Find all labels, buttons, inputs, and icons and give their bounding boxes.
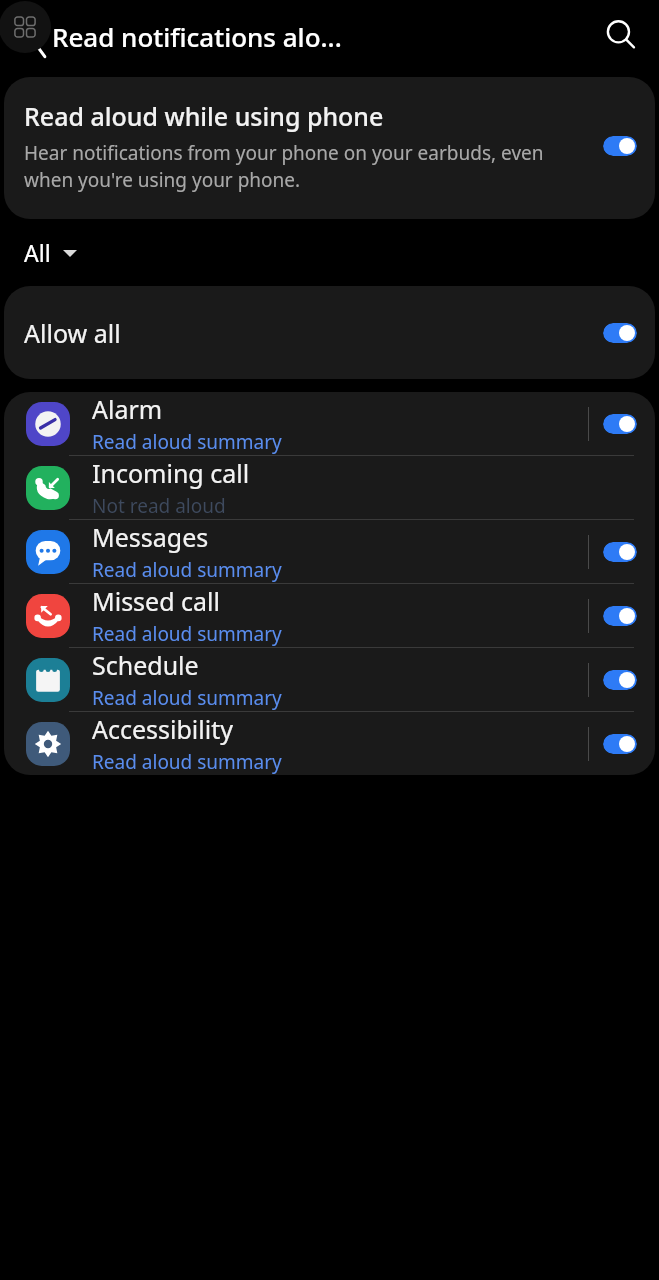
- button[interactable]: Toggle: [603, 542, 637, 562]
- staticText: Read aloud while using phone: [24, 99, 384, 133]
- staticText: Hear notifications from your phone on yo…: [24, 140, 591, 193]
- button[interactable]: Toggle: [603, 414, 637, 434]
- button[interactable]: Allow all: [4, 286, 655, 379]
- staticText: Read aloud summary: [92, 429, 282, 455]
- button[interactable]: All: [18, 231, 83, 274]
- staticText: Alarm: [92, 392, 163, 426]
- button[interactable]: Messages: [4, 520, 655, 583]
- button[interactable]: Back: [8, 7, 64, 63]
- staticText: Not read aloud: [92, 493, 226, 519]
- button[interactable]: Incoming call: [4, 456, 655, 519]
- button[interactable]: Alarm: [4, 392, 655, 455]
- staticText: Incoming call: [92, 456, 250, 490]
- button[interactable]: Toggle: [603, 136, 637, 156]
- button[interactable]: Missed call: [4, 584, 655, 647]
- button[interactable]: Toggle: [603, 670, 637, 690]
- staticText: Read aloud summary: [92, 557, 282, 583]
- button[interactable]: Toggle: [603, 606, 637, 626]
- button[interactable]: Toggle: [603, 734, 637, 754]
- button[interactable]: Read aloud while using phone: [4, 77, 655, 219]
- staticText: Read notifications alo...: [52, 19, 342, 54]
- staticText: Read aloud summary: [92, 749, 282, 775]
- staticText: Messages: [92, 520, 209, 554]
- staticText: Schedule: [92, 648, 199, 682]
- staticText: Allow all: [24, 316, 603, 350]
- staticText: Accessibility: [92, 712, 233, 746]
- staticText: Missed call: [92, 584, 220, 618]
- staticText: Read aloud summary: [92, 685, 282, 711]
- staticText: Read aloud summary: [92, 621, 282, 647]
- button[interactable]: Schedule: [4, 648, 655, 711]
- button[interactable]: Accessibility: [4, 712, 655, 775]
- button[interactable]: Search: [595, 9, 647, 61]
- button[interactable]: Toggle: [603, 323, 637, 343]
- staticText: All: [24, 237, 51, 268]
